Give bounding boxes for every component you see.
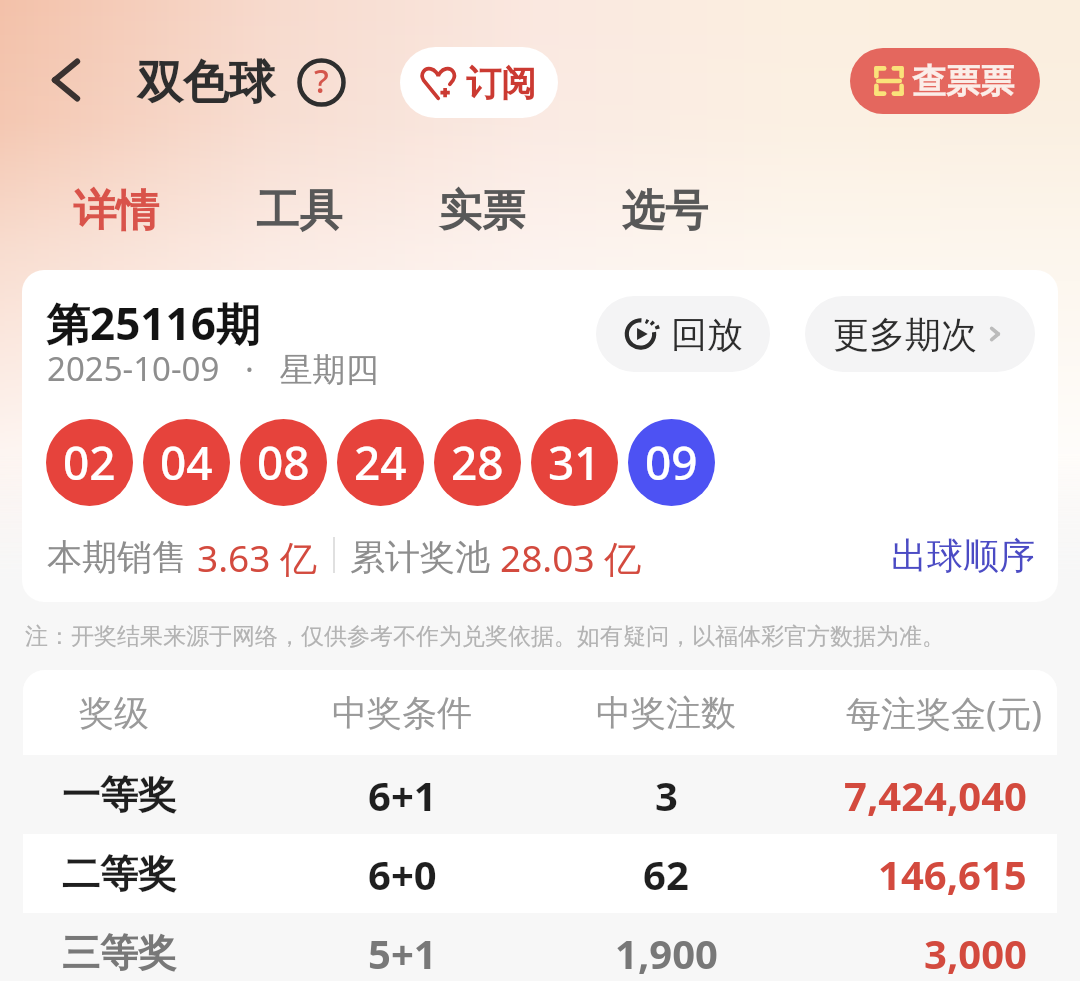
button[interactable]: 奖级 bbox=[23, 670, 1057, 755]
staticText: 31 bbox=[548, 431, 601, 494]
staticText: 09 bbox=[645, 431, 698, 494]
staticText: 28 bbox=[451, 431, 504, 494]
staticText: 中奖条件 bbox=[332, 691, 472, 735]
staticText: 订阅 bbox=[466, 61, 536, 105]
staticText: 62 bbox=[643, 847, 689, 901]
staticText: 更多期次 bbox=[833, 312, 977, 357]
button[interactable]: 04 bbox=[143, 419, 230, 506]
staticText: 累计奖池 bbox=[350, 532, 500, 578]
button[interactable]: 查票票 bbox=[850, 48, 1040, 114]
staticText: 146,615 bbox=[878, 847, 1027, 901]
staticText: 本期销售 bbox=[47, 532, 197, 578]
staticText: 双色球 bbox=[137, 54, 275, 112]
button[interactable]: 实票 bbox=[420, 173, 544, 249]
staticText: 3,000 bbox=[924, 926, 1027, 980]
button[interactable]: 02 bbox=[46, 419, 133, 506]
button[interactable]: Help bbox=[297, 58, 346, 107]
staticText: 奖级 bbox=[79, 691, 149, 735]
staticText: 3.63 亿 bbox=[197, 532, 318, 578]
staticText: 中奖注数 bbox=[596, 691, 736, 735]
staticText: 查票票 bbox=[912, 60, 1014, 103]
staticText: ? bbox=[314, 58, 329, 103]
staticText: 3 bbox=[655, 768, 678, 822]
button[interactable]: 订阅 bbox=[400, 47, 558, 118]
staticText: 2025-10-09 · 星期四 bbox=[47, 346, 379, 391]
button[interactable]: 更多期次 bbox=[805, 296, 1035, 372]
button[interactable]: 二等奖 bbox=[23, 834, 1057, 913]
button[interactable]: 工具 bbox=[237, 173, 361, 249]
staticText: 选号 bbox=[622, 184, 708, 238]
button[interactable]: Back bbox=[38, 52, 94, 108]
button[interactable]: 24 bbox=[337, 419, 424, 506]
button[interactable]: 08 bbox=[240, 419, 327, 506]
button[interactable]: 28 bbox=[434, 419, 521, 506]
button[interactable]: 一等奖 bbox=[23, 755, 1057, 834]
staticText: 实票 bbox=[439, 184, 525, 238]
staticText: 一等奖 bbox=[62, 771, 176, 819]
staticText: 6+1 bbox=[368, 768, 437, 822]
button[interactable]: 三等奖 bbox=[23, 913, 1057, 981]
staticText: 详情 bbox=[73, 184, 159, 238]
staticText: 工具 bbox=[256, 184, 342, 238]
staticText: 二等奖 bbox=[62, 850, 176, 898]
button[interactable]: 09 bbox=[628, 419, 715, 506]
staticText: 每注奖金(元) bbox=[846, 689, 1043, 737]
staticText: 回放 bbox=[671, 312, 743, 357]
button[interactable]: 详情 bbox=[54, 173, 178, 249]
button[interactable]: 选号 bbox=[603, 173, 727, 249]
button[interactable]: 回放 bbox=[596, 296, 770, 372]
staticText: 24 bbox=[354, 431, 407, 494]
staticText: 7,424,040 bbox=[844, 768, 1027, 822]
staticText: 28.03 亿 bbox=[500, 532, 642, 578]
staticText: 1,900 bbox=[615, 926, 718, 980]
button[interactable]: 31 bbox=[531, 419, 618, 506]
staticText: 第25116期 bbox=[46, 293, 260, 353]
button[interactable]: 出球顺序 bbox=[891, 533, 1035, 578]
staticText: 6+0 bbox=[368, 847, 437, 901]
staticText: 5+1 bbox=[368, 926, 437, 980]
staticText: 08 bbox=[257, 431, 310, 494]
staticText: 三等奖 bbox=[62, 929, 176, 977]
staticText: 注：开奖结果来源于网络，仅供参考不作为兑奖依据。如有疑问，以福体彩官方数据为准。 bbox=[25, 622, 945, 651]
staticText: 02 bbox=[63, 431, 116, 494]
staticText: 04 bbox=[160, 431, 213, 494]
